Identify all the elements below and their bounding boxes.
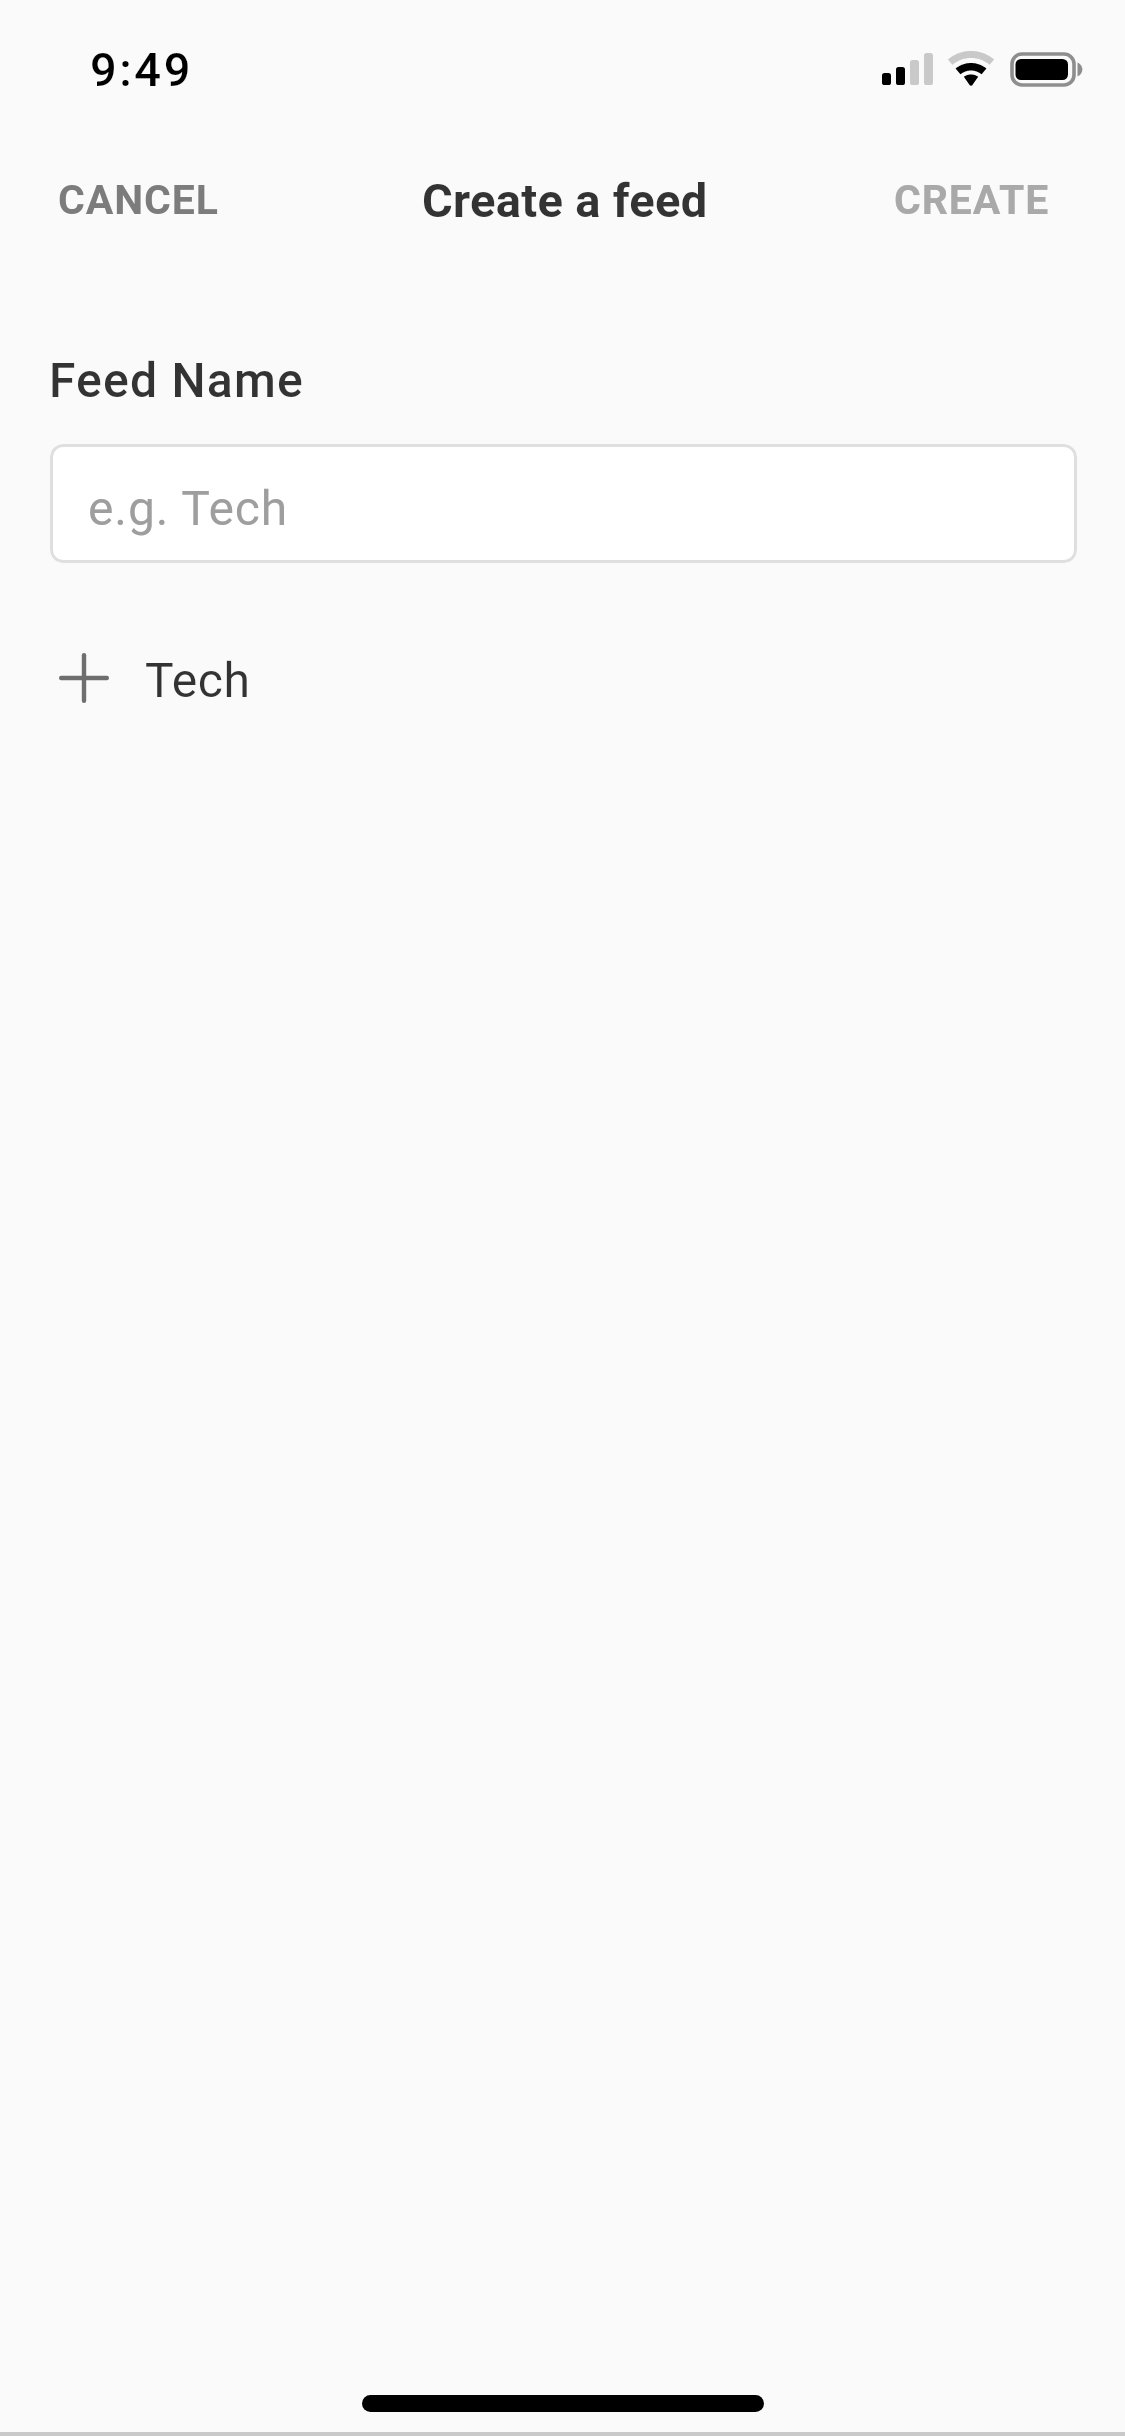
other: Battery: [1006, 48, 1088, 90]
other: Wi-Fi: [941, 45, 1001, 91]
staticText: CANCEL: [58, 176, 219, 224]
staticText: Create a feed: [422, 173, 708, 228]
staticText: Feed Name: [49, 352, 304, 408]
button[interactable]: CANCEL: [0, 150, 249, 250]
staticText: e.g. Tech: [88, 480, 289, 536]
staticText: CREATE: [894, 176, 1050, 224]
staticText: 9:49: [90, 42, 194, 97]
other: Cellular signal: [880, 48, 936, 90]
button[interactable]: Add Tech: [0, 617, 1125, 737]
staticText: Tech: [145, 652, 251, 708]
button[interactable]: CREATE: [864, 150, 1125, 250]
button[interactable]: e.g. Tech: [50, 444, 1077, 563]
